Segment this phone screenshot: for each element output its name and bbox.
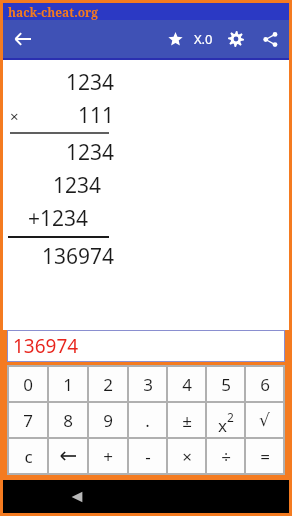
staticText: 136974 [42,242,115,271]
staticText: 1234 [53,171,102,200]
button[interactable]: = [246,439,283,473]
staticText: × [10,106,19,126]
staticText: ÷ [221,445,231,468]
button[interactable]: 5 [207,367,244,401]
button[interactable]: 3 [129,367,166,401]
button[interactable]: Share [255,24,285,54]
button[interactable]: . [129,403,166,437]
button[interactable]: Back [63,483,91,511]
staticText: - [145,445,151,468]
staticText: × [182,445,192,468]
staticText: . [145,409,150,432]
staticText: + [103,445,113,468]
staticText: 0 [23,373,33,396]
staticText: +1234 [28,204,89,233]
staticText: √ [259,410,270,430]
staticText: 1234 [66,68,115,97]
button[interactable]: 1 [49,367,87,401]
staticText: X.0 [194,30,213,48]
button[interactable]: ÷ [207,439,244,473]
button[interactable]: × [168,439,205,473]
button[interactable]: 4 [168,367,205,401]
button[interactable]: 2 [89,367,127,401]
staticText: hack-cheat.org [8,4,99,20]
staticText: 136974 [13,333,79,359]
button[interactable]: c [9,439,47,473]
button[interactable]: Favorite [160,24,190,54]
button[interactable]: - [129,439,166,473]
staticText: ± [182,409,192,432]
button[interactable]: 9 [89,403,127,437]
button[interactable]: 136974 [7,330,285,362]
staticText: c [24,445,33,468]
button[interactable]: X.0 [192,30,215,48]
staticText: 9 [103,409,113,432]
button[interactable]: 7 [9,403,47,437]
staticText: 2 [227,409,234,425]
staticText: 6 [260,373,270,396]
staticText: = [260,445,270,468]
button[interactable]: 6 [246,367,283,401]
staticText: 2 [103,373,113,396]
staticText: 7 [23,409,33,432]
staticText: 1234 [66,138,115,167]
staticText: 4 [182,373,192,396]
button[interactable]: Back [3,20,41,58]
staticText: 8 [63,409,73,432]
staticText: 111 [78,101,115,130]
button[interactable] [49,439,87,473]
button[interactable]: √ [246,403,283,437]
staticText: x [218,414,227,437]
button[interactable]: x [207,403,244,437]
button[interactable]: 0 [9,367,47,401]
button[interactable]: ± [168,403,205,437]
button[interactable]: 8 [49,403,87,437]
staticText: 1 [63,373,73,396]
button[interactable]: Settings [221,24,251,54]
button[interactable]: + [89,439,127,473]
staticText: 5 [221,373,231,396]
staticText: 3 [143,373,153,396]
